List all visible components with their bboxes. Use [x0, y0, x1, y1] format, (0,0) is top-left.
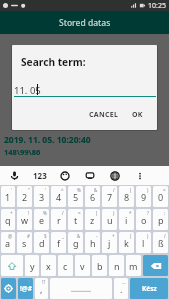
staticText: e: [39, 214, 45, 226]
button[interactable]: Stickers: [77, 166, 102, 185]
staticText: +: [112, 233, 115, 239]
staticText: &: [77, 233, 81, 239]
button[interactable]: +: [102, 232, 117, 253]
button[interactable]: @: [1, 232, 15, 253]
button[interactable]: (: [85, 209, 100, 230]
button[interactable]: /: [153, 232, 168, 253]
button[interactable]: Voice input: [2, 166, 27, 185]
button[interactable]: 1: [18, 278, 33, 299]
button[interactable]: ): [102, 209, 117, 230]
staticText: ': [45, 187, 47, 193]
button[interactable]: *: [119, 209, 134, 230]
staticText: v: [80, 260, 85, 272]
staticText: @: [8, 233, 13, 239]
button[interactable]: =: [68, 209, 83, 230]
staticText: l: [142, 237, 145, 249]
button[interactable]: %: [68, 186, 83, 207]
staticText: (: [96, 210, 98, 216]
button[interactable]: !: [17, 209, 32, 230]
staticText: &: [94, 187, 98, 193]
button[interactable]: ^: [51, 186, 66, 207]
button[interactable]: :: [153, 209, 168, 230]
button[interactable]: =: [153, 186, 168, 207]
staticText: $: [44, 233, 47, 239]
button[interactable]: More options: [127, 166, 152, 185]
button[interactable]: ": [17, 186, 32, 207]
button[interactable]: ': [1, 186, 15, 207]
button[interactable]: y: [25, 255, 39, 276]
staticText: j: [108, 237, 111, 249]
button[interactable]: ): [136, 186, 151, 207]
staticText: -: [96, 233, 98, 239]
staticText: 10:25: [148, 1, 166, 11]
button[interactable]: !?: [35, 278, 48, 299]
button[interactable]: n: [109, 255, 124, 276]
button[interactable]: /: [102, 186, 117, 207]
button[interactable]: (: [119, 186, 134, 207]
button[interactable]: $: [34, 232, 49, 253]
button[interactable]: v: [75, 255, 90, 276]
staticText: CANCEL: [89, 110, 119, 120]
staticText: !@#: [20, 284, 32, 293]
staticText: *: [129, 210, 132, 216]
staticText: =: [78, 210, 81, 216]
button[interactable]: %: [34, 209, 49, 230]
staticText: 0: [158, 191, 164, 203]
button[interactable]: Kész: [130, 278, 168, 299]
button[interactable]: _: [51, 232, 66, 253]
staticText: z: [90, 214, 95, 226]
staticText: w: [21, 214, 29, 226]
staticText: %: [77, 187, 81, 193]
button[interactable]: b: [92, 255, 107, 276]
staticText: ...: [122, 279, 126, 285]
button[interactable]: /: [51, 209, 66, 230]
staticText: :: [164, 210, 166, 216]
button[interactable]: -: [85, 232, 100, 253]
button[interactable]: 123: [27, 166, 52, 185]
staticText: ": [28, 187, 30, 193]
button[interactable]: m: [126, 255, 141, 276]
staticText: 11. 05: [14, 84, 41, 97]
button[interactable]: c: [58, 255, 73, 276]
staticText: y: [30, 260, 35, 272]
button[interactable]: 2019. 11. 05. 10:20:40: [0, 134, 169, 157]
button[interactable]: [50, 278, 112, 299]
staticText: ): [147, 187, 149, 193]
staticText: ): [147, 233, 149, 239]
button[interactable]: Change language: [102, 166, 127, 185]
button[interactable]: #: [17, 232, 32, 253]
staticText: ,: [40, 283, 43, 295]
button[interactable]: [143, 255, 168, 276]
staticText: m: [129, 260, 138, 272]
button[interactable]: (: [119, 232, 134, 253]
staticText: %: [43, 210, 47, 216]
button[interactable]: &: [85, 186, 100, 207]
staticText: ?: [147, 210, 149, 216]
staticText: 6: [90, 191, 96, 203]
staticText: 9: [141, 191, 147, 203]
staticText: /: [62, 210, 64, 216]
staticText: u: [107, 214, 113, 226]
staticText: 148\99\86: [4, 147, 41, 157]
staticText: _: [62, 233, 64, 239]
button[interactable]: ': [34, 186, 49, 207]
button[interactable]: &: [68, 232, 83, 253]
staticText: 8: [124, 191, 130, 203]
button[interactable]: +: [1, 209, 15, 230]
button[interactable]: CANCEL: [86, 108, 122, 122]
button[interactable]: x: [41, 255, 56, 276]
staticText: o: [141, 214, 147, 226]
button[interactable]: ...: [114, 278, 128, 299]
button[interactable]: ?: [136, 209, 151, 230]
staticText: ß: [158, 237, 164, 249]
staticText: c: [63, 260, 68, 272]
button[interactable]: ): [136, 232, 151, 253]
button[interactable]: [1, 278, 16, 299]
staticText: #: [27, 233, 30, 239]
button[interactable]: [1, 255, 23, 276]
button[interactable]: Theme: [52, 166, 77, 185]
staticText: OK: [132, 110, 143, 120]
button[interactable]: OK: [129, 108, 146, 122]
staticText: x: [46, 260, 51, 272]
staticText: t: [74, 214, 78, 226]
